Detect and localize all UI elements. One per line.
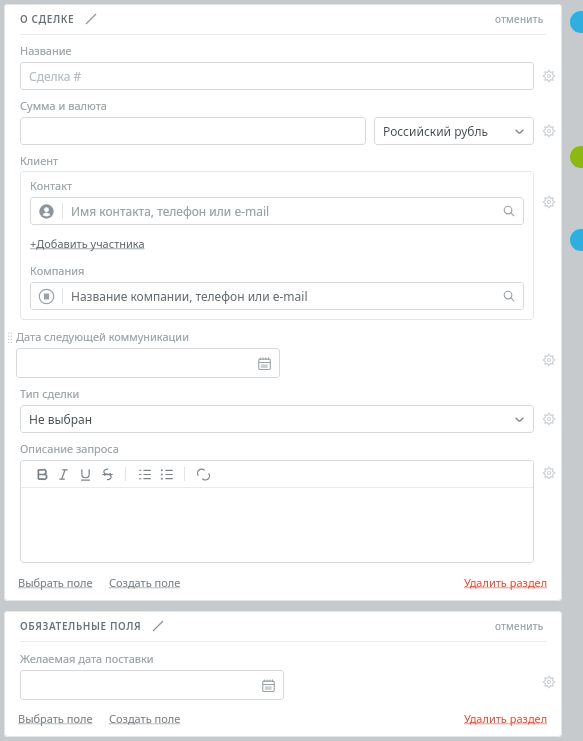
button[interactable]: Сделка # xyxy=(20,62,534,90)
staticText: Название xyxy=(20,43,72,58)
button[interactable] xyxy=(16,348,280,378)
button[interactable]: Название компании, телефон или e-mail xyxy=(30,282,524,310)
staticText: Выбрать поле xyxy=(18,711,93,726)
staticText: О СДЕЛКЕ xyxy=(20,12,75,26)
staticText: Описание запроса xyxy=(20,441,119,456)
staticText: +Добавить участника xyxy=(30,236,145,251)
staticText: Создать поле xyxy=(109,575,181,590)
staticText: отменить xyxy=(495,619,544,633)
staticText: Сумма и валюта xyxy=(20,98,107,113)
button[interactable]: Edit xyxy=(150,618,166,634)
button[interactable]: Выбрать поле xyxy=(16,572,95,593)
button[interactable]: +Добавить участника xyxy=(30,234,145,253)
button[interactable]: Format xyxy=(133,463,155,485)
button[interactable]: Settings xyxy=(540,410,558,428)
staticText: Не выбран xyxy=(29,411,93,427)
button[interactable]: Создать поле xyxy=(107,572,183,593)
button[interactable]: Format xyxy=(30,463,52,485)
button[interactable]: Format xyxy=(192,463,214,485)
button[interactable] xyxy=(20,117,366,145)
button[interactable]: Settings xyxy=(540,351,558,369)
button[interactable]: Format xyxy=(52,463,74,485)
button[interactable]: отменить xyxy=(493,615,546,637)
staticText: Дата следующей коммуникации xyxy=(16,329,189,344)
button[interactable]: Удалить раздел xyxy=(462,572,550,593)
staticText: Тип сделки xyxy=(20,386,80,401)
button[interactable] xyxy=(20,670,284,700)
staticText: Компания xyxy=(30,263,85,278)
button[interactable]: Удалить раздел xyxy=(462,708,550,729)
staticText: Клиент xyxy=(20,153,59,168)
staticText: Удалить раздел xyxy=(464,711,548,726)
button[interactable]: Settings xyxy=(540,122,558,140)
button[interactable]: Выбрать поле xyxy=(16,708,95,729)
button[interactable]: Имя контакта, телефон или e-mail xyxy=(30,197,524,225)
staticText: Контакт xyxy=(30,178,73,193)
button[interactable]: Settings xyxy=(540,673,558,691)
button[interactable]: Format xyxy=(155,463,177,485)
staticText: Создать поле xyxy=(109,711,181,726)
staticText: Название компании, телефон или e-mail xyxy=(71,288,308,304)
button[interactable]: Создать поле xyxy=(107,708,183,729)
button[interactable]: Settings xyxy=(540,193,558,211)
button[interactable]: Settings xyxy=(540,464,558,482)
button[interactable]: Settings xyxy=(540,67,558,85)
staticText: Сделка # xyxy=(29,68,82,84)
staticText: ОБЯЗАТЕЛЬНЫЕ ПОЛЯ xyxy=(20,619,142,633)
button[interactable]: Не выбран xyxy=(20,405,534,433)
button[interactable]: Российский рубль xyxy=(374,117,534,145)
staticText: Российский рубль xyxy=(383,123,488,139)
staticText: Выбрать поле xyxy=(18,575,93,590)
staticText: отменить xyxy=(495,12,544,26)
button[interactable]: отменить xyxy=(493,8,546,30)
staticText: Желаемая дата поставки xyxy=(20,651,154,666)
button[interactable]: Format xyxy=(96,463,118,485)
button[interactable]: Edit xyxy=(83,11,99,27)
staticText: Удалить раздел xyxy=(464,575,548,590)
staticText: Имя контакта, телефон или e-mail xyxy=(71,203,270,219)
button[interactable]: Format xyxy=(74,463,96,485)
